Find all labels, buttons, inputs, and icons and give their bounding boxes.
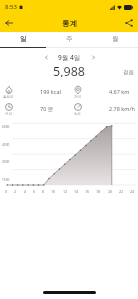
staticText: 22	[119, 189, 124, 194]
staticText: 시간	[5, 112, 12, 116]
staticText: 4.67 km	[109, 88, 130, 95]
staticText: 6	[33, 189, 36, 194]
staticText: 4500	[2, 143, 10, 147]
staticText: 6000	[2, 125, 10, 129]
staticText: 9월 4일	[58, 53, 81, 62]
button[interactable]: 주	[46, 32, 92, 48]
staticText: 16	[85, 189, 90, 194]
staticText: 4	[24, 189, 27, 194]
staticText: 18	[96, 189, 101, 194]
staticText: 14	[74, 189, 79, 194]
button[interactable]: 거리	[69, 83, 138, 100]
staticText: 일	[20, 35, 27, 43]
button[interactable]: 월	[92, 32, 138, 48]
button[interactable]: Share	[120, 14, 138, 32]
staticText: 0	[5, 189, 8, 194]
button[interactable]: 칼로리	[0, 83, 69, 100]
staticText: 10	[51, 189, 56, 194]
staticText: 속도	[74, 112, 81, 116]
button[interactable]: 일	[0, 32, 46, 48]
staticText: 5,988	[53, 63, 85, 77]
button[interactable]: Back	[0, 14, 18, 32]
staticText: 20	[108, 189, 113, 194]
staticText: 3000	[2, 160, 10, 164]
staticText: 70 분	[40, 105, 54, 113]
button[interactable]: 속도	[69, 100, 138, 117]
staticText: 8:53	[5, 3, 17, 11]
staticText: 걸음	[123, 69, 134, 76]
staticText: 통계	[62, 19, 77, 28]
staticText: 주	[66, 35, 73, 43]
staticText: 8	[42, 189, 45, 194]
staticText: 12	[63, 189, 68, 194]
staticText: 칼로리	[3, 95, 14, 99]
button[interactable]: Next day	[86, 50, 100, 64]
staticText: 24	[130, 189, 135, 194]
staticText: 2.78 km/h	[109, 105, 135, 112]
staticText: 2	[14, 189, 17, 194]
staticText: 거리	[74, 95, 81, 99]
button[interactable]: Previous day	[39, 50, 53, 64]
staticText: 월	[112, 35, 119, 43]
button[interactable]: 시간	[0, 100, 69, 117]
staticText: 199 kcal	[40, 88, 61, 95]
staticText: 1500	[2, 178, 10, 182]
